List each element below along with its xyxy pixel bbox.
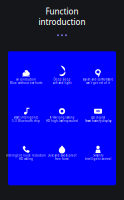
staticText: LED (96, 109, 100, 113)
staticText: Stylish and comfortable (82, 78, 113, 81)
button[interactable]: Dust and sweat proof (44, 142, 80, 163)
button[interactable]: air conduction (8, 66, 44, 87)
button[interactable]: Simplify (80, 142, 116, 163)
staticText: Simplify (93, 154, 103, 157)
staticText: free force (55, 157, 69, 161)
staticText: HD high-latency sound (46, 119, 78, 123)
button[interactable]: Intelligent noise reduction (8, 142, 44, 163)
staticText: Blue without ear hurts (10, 81, 42, 85)
staticText: LED digital (91, 116, 105, 119)
staticText: air conduction (16, 78, 36, 81)
staticText: Smart battery display (85, 119, 111, 123)
staticText: Deep sleep (53, 78, 70, 81)
button[interactable]: Smart intelligence (8, 104, 44, 125)
staticText: Dust and sweat proof (47, 154, 76, 157)
staticText: HD calling (19, 157, 33, 161)
button[interactable]: Stylish and comfortable (80, 66, 116, 87)
staticText: soft and light (52, 81, 71, 85)
staticText: can't get rid of it (86, 81, 110, 85)
staticText: 5.3 Bluetooth chip (12, 119, 40, 123)
button[interactable]: A few long-lasting (44, 104, 80, 125)
button[interactable]: LED (80, 104, 116, 125)
staticText: introduction (38, 17, 85, 27)
staticText: Intelligent control (84, 157, 111, 161)
staticText: Smart intelligence (13, 116, 38, 119)
button[interactable]: Deep sleep (44, 66, 80, 87)
staticText: Function (45, 6, 78, 17)
staticText: A few long-lasting (49, 116, 74, 119)
staticText: Intelligent noise reduction (6, 154, 46, 157)
